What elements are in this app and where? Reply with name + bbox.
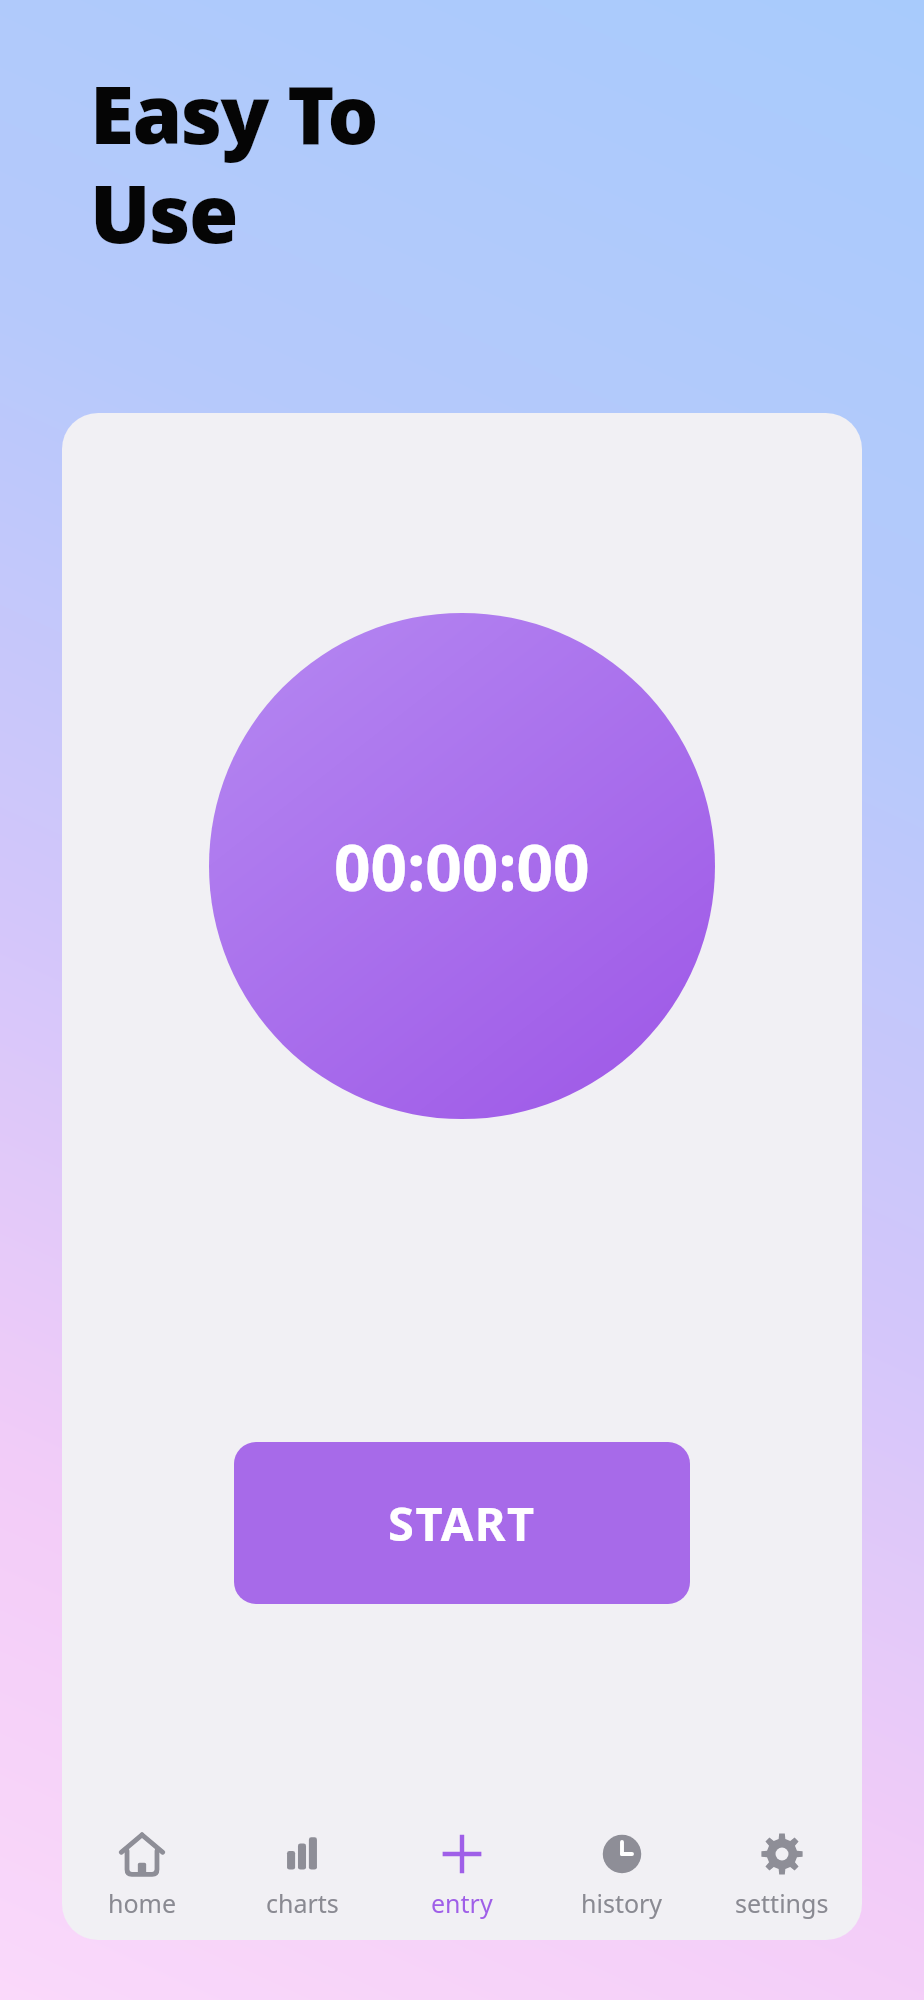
button[interactable]: entry bbox=[382, 1816, 542, 1940]
staticText: history bbox=[581, 1886, 663, 1920]
staticText: charts bbox=[266, 1886, 339, 1920]
staticText: 00:00:00 bbox=[334, 823, 590, 910]
button[interactable]: START bbox=[234, 1442, 690, 1604]
button[interactable]: settings bbox=[702, 1816, 862, 1940]
staticText: settings bbox=[735, 1886, 829, 1920]
staticText: home bbox=[108, 1886, 177, 1920]
staticText: entry bbox=[431, 1886, 493, 1920]
staticText: Easy To Use bbox=[90, 58, 377, 267]
staticText: START bbox=[388, 1491, 536, 1555]
button[interactable]: history bbox=[542, 1816, 702, 1940]
button[interactable]: charts bbox=[222, 1816, 382, 1940]
button[interactable]: home bbox=[62, 1816, 222, 1940]
button[interactable]: 00:00:00 bbox=[209, 613, 715, 1119]
